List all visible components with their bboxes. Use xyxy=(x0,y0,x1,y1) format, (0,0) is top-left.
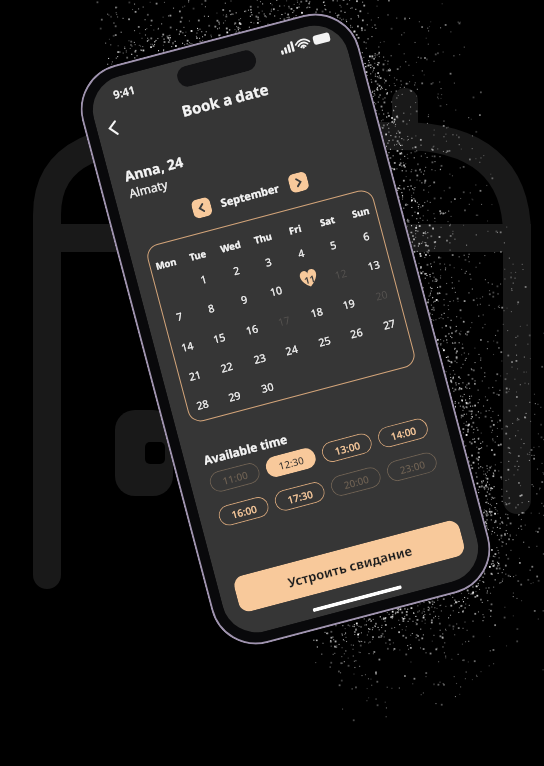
button[interactable]: 20 xyxy=(374,287,390,304)
staticText: 11 xyxy=(303,272,317,287)
button[interactable]: 9 xyxy=(239,292,250,307)
button[interactable]: 17 xyxy=(276,313,292,329)
button[interactable]: 12:30 xyxy=(263,446,318,479)
button[interactable]: 10 xyxy=(268,283,284,299)
staticText: Available time xyxy=(202,430,289,468)
button[interactable]: 2 xyxy=(232,263,242,278)
staticText: Anna, 24 xyxy=(122,152,185,186)
staticText: 16:00 xyxy=(230,501,259,522)
button[interactable]: 21 xyxy=(187,367,203,384)
button[interactable]: 17:30 xyxy=(272,480,327,513)
staticText: Tue xyxy=(188,247,208,264)
button[interactable]: 18 xyxy=(309,304,325,321)
button[interactable]: 1 xyxy=(199,271,209,287)
button[interactable]: 28 xyxy=(195,396,211,413)
staticText: Fri xyxy=(287,222,303,238)
button[interactable]: 24 xyxy=(284,342,300,358)
button[interactable]: 23 xyxy=(252,350,268,367)
button[interactable]: Next month xyxy=(287,171,310,194)
button[interactable]: 5 xyxy=(328,237,339,253)
staticText: 9:41 xyxy=(111,82,137,102)
staticText: Book a date xyxy=(95,57,355,143)
staticText: 11:00 xyxy=(221,468,250,488)
staticText: Sat xyxy=(318,213,337,229)
button[interactable]: 14 xyxy=(180,338,196,355)
button[interactable]: 23:00 xyxy=(385,450,439,483)
button[interactable]: Back xyxy=(100,113,132,142)
button[interactable]: 6 xyxy=(361,229,372,244)
staticText: Устроить свидание xyxy=(286,541,414,591)
button[interactable]: 7 xyxy=(175,309,185,324)
button[interactable]: 12 xyxy=(333,265,349,282)
staticText: September xyxy=(219,180,281,210)
button[interactable]: 26 xyxy=(349,324,365,341)
staticText: Thu xyxy=(253,230,273,247)
staticText: 23:00 xyxy=(398,457,427,477)
button[interactable]: 27 xyxy=(382,316,398,333)
button[interactable]: 8 xyxy=(207,300,217,316)
staticText: Almaty xyxy=(127,175,170,201)
button[interactable]: 15 xyxy=(212,330,228,347)
button[interactable]: 3 xyxy=(264,254,274,270)
button[interactable]: 29 xyxy=(227,388,243,405)
button[interactable]: 30 xyxy=(260,379,276,396)
staticText: 20:00 xyxy=(342,472,371,492)
button[interactable]: Устроить свидание xyxy=(232,518,466,614)
button[interactable]: Previous month xyxy=(190,196,213,219)
button[interactable]: 13 xyxy=(366,257,382,274)
button[interactable]: 19 xyxy=(341,295,357,312)
staticText: 14:00 xyxy=(389,423,418,443)
staticText: 17:30 xyxy=(286,487,315,507)
button[interactable]: 4 xyxy=(296,246,307,261)
staticText: 12:30 xyxy=(277,453,306,473)
staticText: Sun xyxy=(350,204,371,221)
staticText: Wed xyxy=(219,238,242,256)
button[interactable]: 14:00 xyxy=(376,416,430,450)
staticText: 13:00 xyxy=(333,438,362,458)
button[interactable]: 13:00 xyxy=(319,431,374,464)
button[interactable]: 25 xyxy=(317,333,333,350)
button[interactable]: 11:00 xyxy=(207,461,262,494)
button[interactable]: 16:00 xyxy=(216,495,271,528)
staticText: Mon xyxy=(154,255,179,273)
button[interactable]: 16 xyxy=(244,321,260,338)
button[interactable]: 11 xyxy=(295,265,322,291)
button[interactable]: 20:00 xyxy=(328,465,383,498)
button[interactable]: 22 xyxy=(219,359,235,376)
